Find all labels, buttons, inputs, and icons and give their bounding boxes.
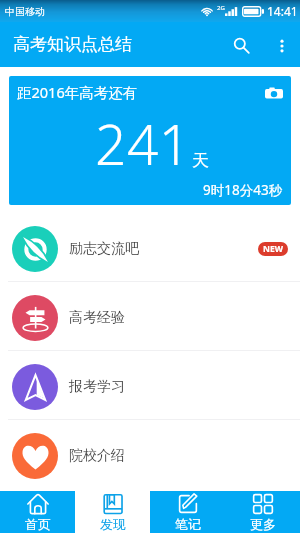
staticText: 241 (95, 106, 191, 181)
button[interactable]: More options (263, 27, 300, 64)
staticText: 9时18分43秒 (203, 181, 283, 199)
staticText: 首页 (25, 516, 51, 532)
staticText: 中国移动 (5, 5, 45, 18)
button[interactable]: 报考学习 (0, 351, 300, 419)
staticText: 天 (192, 150, 209, 171)
button[interactable]: 高考经验 (0, 282, 300, 350)
staticText: 发现 (100, 516, 126, 532)
staticText: 距2016年高考还有 (17, 82, 138, 102)
button[interactable]: 笔记 (150, 491, 225, 533)
staticText: NEW (263, 243, 283, 255)
staticText: 院校介绍 (69, 447, 125, 465)
button[interactable]: 发现 (75, 491, 150, 533)
staticText: 励志交流吧 (69, 240, 139, 258)
button[interactable]: 首页 (0, 491, 75, 533)
button[interactable]: 院校介绍 (0, 420, 300, 488)
button[interactable]: Camera (262, 81, 286, 105)
button[interactable]: Search (219, 23, 263, 67)
staticText: 更多 (250, 516, 276, 532)
button[interactable]: 更多 (225, 491, 300, 533)
staticText: 笔记 (175, 516, 201, 532)
staticText: 高考经验 (69, 309, 125, 327)
staticText: 2G (217, 4, 225, 12)
staticText: 高考知识点总结 (13, 34, 132, 55)
button[interactable]: 距2016年高考还有 (9, 76, 291, 205)
staticText: 报考学习 (69, 378, 125, 396)
staticText: 14:41 (267, 3, 298, 19)
button[interactable]: 励志交流吧 (0, 213, 300, 281)
